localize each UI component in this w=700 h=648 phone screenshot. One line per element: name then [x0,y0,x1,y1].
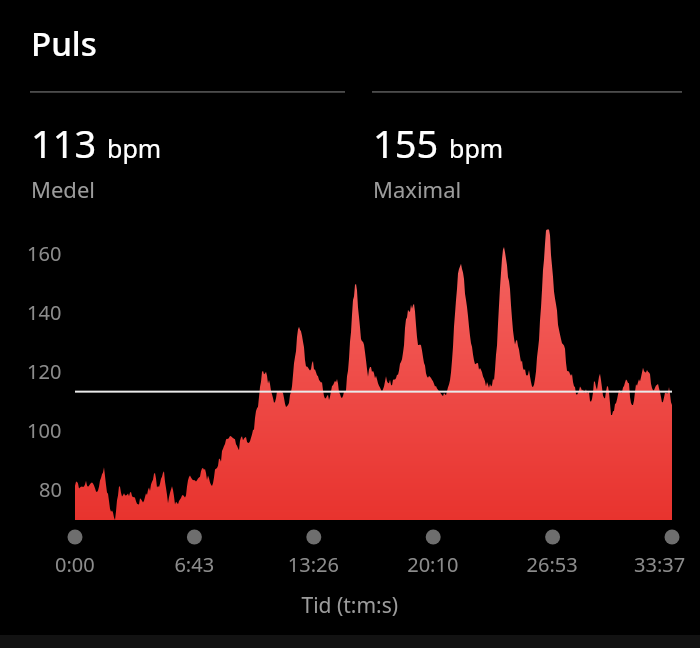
button[interactable] [0,0,700,648]
